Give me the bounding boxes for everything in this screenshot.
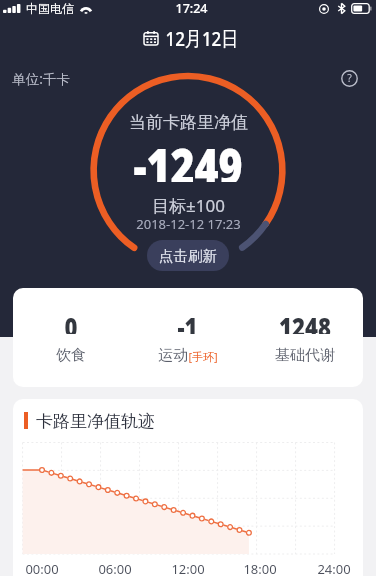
button[interactable]: -1 [129, 308, 246, 365]
staticText: 06:00 [98, 560, 132, 576]
staticText: 0 [64, 308, 77, 334]
staticText: 中国电信 [26, 1, 74, 16]
staticText: ? [347, 71, 352, 85]
staticText: 饮食 [56, 346, 86, 365]
staticText: 目标±100 [152, 194, 225, 217]
staticText: 12:00 [171, 560, 205, 576]
staticText: -1249 [133, 132, 243, 182]
staticText: [手环] [188, 349, 218, 364]
button[interactable]: 点击刷新 [147, 240, 229, 271]
staticText: 1248 [279, 308, 331, 334]
staticText: 00:00 [25, 560, 59, 576]
staticText: 运动 [158, 346, 188, 365]
staticText: 17:24 [175, 0, 208, 17]
staticText: 卡路里净值轨迹 [36, 411, 155, 432]
staticText: 12月12日 [165, 25, 238, 52]
staticText: 24:00 [317, 560, 351, 576]
staticText: 18:00 [243, 560, 277, 576]
staticText: 基础代谢 [275, 346, 335, 365]
staticText: 点击刷新 [159, 247, 217, 265]
button[interactable]: 0 [13, 308, 129, 365]
staticText: 2018-12-12 17:23 [136, 215, 241, 233]
button[interactable]: 1248 [246, 308, 363, 365]
button[interactable]: Help [338, 67, 360, 89]
staticText: 单位:千卡 [12, 70, 70, 88]
staticText: 当前卡路里净值 [129, 112, 248, 133]
staticText: -1 [177, 308, 198, 334]
